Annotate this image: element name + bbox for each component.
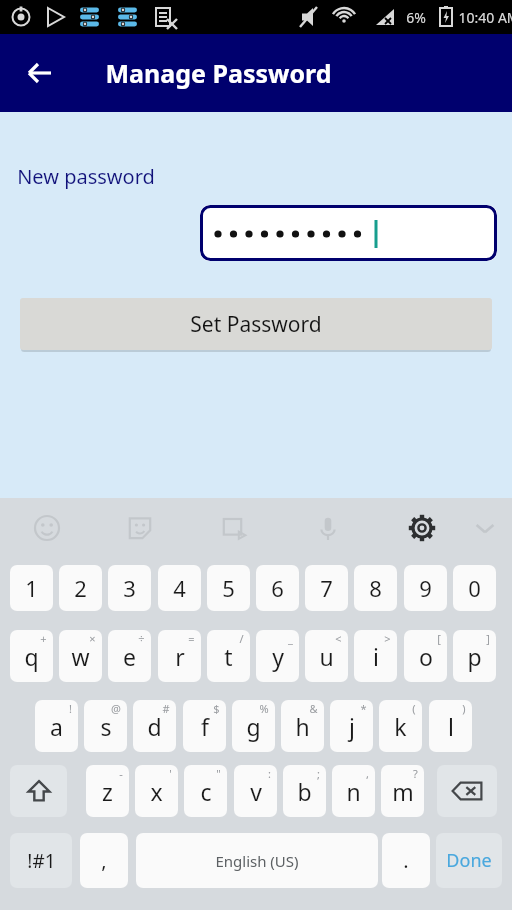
staticText: Set Password	[190, 310, 322, 339]
staticText: 10:40 AM	[458, 8, 512, 27]
button[interactable]: g	[232, 700, 275, 752]
button[interactable]: k	[379, 700, 422, 752]
staticText: 6%	[406, 8, 426, 27]
button[interactable]: Done	[436, 833, 502, 888]
staticText: ÷	[138, 631, 145, 646]
button[interactable]: Shift	[10, 765, 67, 817]
button[interactable]: 5	[207, 565, 250, 611]
staticText: @	[111, 701, 121, 716]
button[interactable]: ,	[80, 833, 128, 888]
staticText: >	[384, 631, 391, 646]
staticText: ;	[317, 766, 320, 781]
button[interactable]: r	[158, 630, 201, 682]
button[interactable]: 8	[354, 565, 397, 611]
button[interactable]: y	[256, 630, 299, 682]
button[interactable]: p	[453, 630, 496, 682]
button[interactable]: u	[305, 630, 348, 682]
button[interactable]: c	[184, 765, 227, 817]
button[interactable]: n	[332, 765, 375, 817]
staticText: #	[162, 701, 170, 716]
staticText: Manage Password	[105, 56, 332, 90]
staticText: 9	[419, 573, 432, 603]
button[interactable]: Settings	[398, 504, 446, 552]
button[interactable]: 3	[108, 565, 151, 611]
staticText: +	[40, 631, 47, 646]
staticText: :	[268, 766, 271, 781]
staticText: g	[246, 711, 261, 742]
staticText: ×	[89, 631, 96, 646]
button[interactable]: a	[35, 700, 78, 752]
button[interactable]: o	[404, 630, 447, 682]
staticText: e	[123, 641, 136, 672]
staticText: i	[373, 641, 379, 672]
staticText: s	[100, 711, 112, 742]
button[interactable]: English (US)	[136, 833, 378, 888]
button[interactable]	[200, 205, 497, 261]
staticText: 0	[468, 573, 481, 603]
button[interactable]: v	[234, 765, 277, 817]
staticText: !#1	[27, 848, 56, 874]
button[interactable]: m	[381, 765, 424, 817]
button[interactable]: q	[10, 630, 53, 682]
staticText: y	[272, 641, 284, 672]
staticText: ]	[486, 631, 490, 646]
button[interactable]: Set Password	[20, 298, 492, 350]
staticText: q	[24, 641, 39, 672]
button[interactable]: Back	[14, 47, 66, 99]
button[interactable]: d	[133, 700, 176, 752]
button[interactable]: i	[354, 630, 397, 682]
button[interactable]: 6	[256, 565, 299, 611]
button[interactable]: s	[84, 700, 127, 752]
staticText: English (US)	[215, 851, 299, 871]
staticText: New password	[17, 163, 155, 190]
button[interactable]: GIF	[210, 504, 258, 552]
button[interactable]: e	[108, 630, 151, 682]
staticText: ?	[413, 766, 418, 781]
staticText: 5	[222, 573, 235, 603]
button[interactable]: 7	[305, 565, 348, 611]
staticText: .	[403, 847, 409, 874]
button[interactable]: 1	[10, 565, 53, 611]
button[interactable]: !#1	[10, 833, 72, 888]
button[interactable]: h	[281, 700, 324, 752]
staticText: ,	[101, 847, 107, 874]
button[interactable]: .	[382, 833, 430, 888]
staticText: h	[295, 711, 310, 742]
button[interactable]: z	[86, 765, 129, 817]
staticText: d	[147, 711, 162, 742]
button[interactable]: Emoji	[23, 504, 71, 552]
staticText: w	[71, 641, 90, 672]
button[interactable]: 0	[453, 565, 496, 611]
staticText: Done	[446, 848, 492, 873]
staticText: 1	[25, 573, 38, 603]
staticText: 6	[271, 573, 284, 603]
button[interactable]: t	[207, 630, 250, 682]
staticText: 3	[123, 573, 136, 603]
staticText: &	[309, 701, 318, 716]
button[interactable]: x	[135, 765, 178, 817]
button[interactable]: j	[330, 700, 373, 752]
button[interactable]: Voice input	[304, 504, 352, 552]
staticText: a	[50, 711, 63, 742]
button[interactable]: Backspace	[437, 765, 497, 817]
staticText: !	[69, 701, 72, 716]
staticText: )	[462, 701, 466, 716]
button[interactable]: f	[183, 700, 226, 752]
button[interactable]: l	[429, 700, 472, 752]
button[interactable]: w	[59, 630, 102, 682]
button[interactable]: b	[283, 765, 326, 817]
button[interactable]: 9	[404, 565, 447, 611]
button[interactable]: Stickers	[116, 504, 164, 552]
staticText: j	[349, 711, 355, 742]
staticText: %	[259, 701, 269, 716]
staticText: c	[200, 776, 212, 807]
staticText: -	[119, 766, 123, 781]
staticText: ,	[366, 766, 369, 781]
button[interactable]: 2	[59, 565, 102, 611]
staticText: l	[448, 711, 454, 742]
staticText: k	[394, 711, 407, 742]
button[interactable]: 4	[158, 565, 201, 611]
staticText: 7	[320, 573, 333, 603]
staticText: "	[216, 766, 221, 781]
